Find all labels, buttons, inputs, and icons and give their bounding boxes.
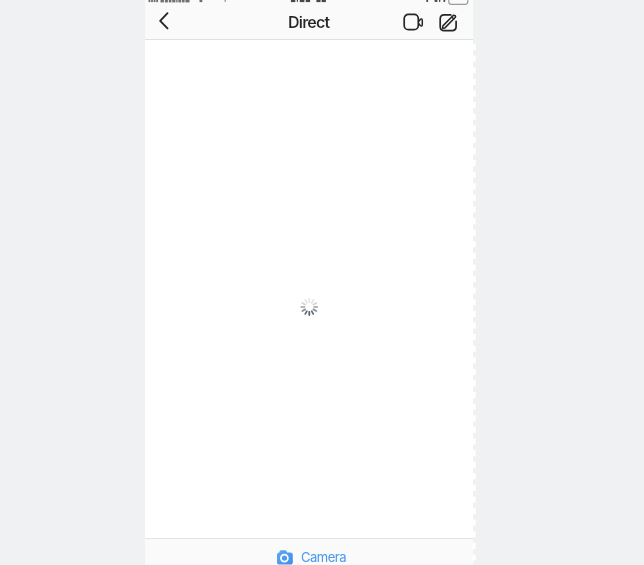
button[interactable] xyxy=(397,8,429,37)
button[interactable] xyxy=(435,8,463,37)
staticText: Camera xyxy=(301,549,346,565)
button[interactable]: Camera xyxy=(277,549,346,565)
button[interactable] xyxy=(151,5,185,39)
staticText: Direct xyxy=(288,12,330,31)
